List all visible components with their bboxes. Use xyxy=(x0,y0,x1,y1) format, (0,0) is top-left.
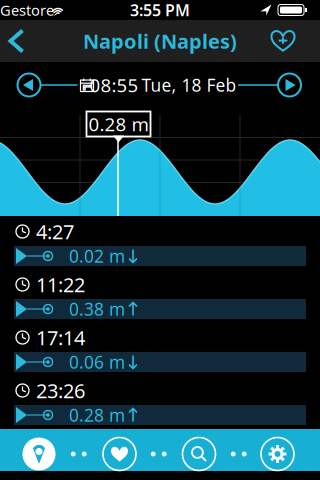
button[interactable]: Next tide xyxy=(274,70,304,100)
staticText: 0.02 m xyxy=(69,244,125,267)
staticText: 0.28 m xyxy=(69,403,125,426)
button[interactable]: Search xyxy=(182,437,215,470)
staticText: 0.06 m xyxy=(69,350,125,373)
button[interactable]: Locations xyxy=(22,437,55,470)
staticText: 0.28 m xyxy=(88,112,148,136)
staticText: 0.38 m xyxy=(69,297,125,320)
button[interactable]: Back xyxy=(1,20,34,61)
button[interactable]: Add to favorites xyxy=(261,20,305,61)
button[interactable]: Tide 4:27 0.02 m xyxy=(14,246,306,266)
button[interactable]: Favorites xyxy=(103,437,136,470)
button[interactable]: Tide 11:22 0.38 m xyxy=(14,299,306,319)
staticText: 11:22 xyxy=(36,271,85,298)
staticText: 23:26 xyxy=(36,377,85,404)
button[interactable]: Tide 17:14 0.06 m xyxy=(14,352,306,372)
button[interactable]: Tide 23:26 0.28 m xyxy=(14,405,306,425)
button[interactable]: Previous tide xyxy=(14,70,44,100)
staticText: 17:14 xyxy=(36,324,85,351)
staticText: Tue, 18 Feb xyxy=(141,73,236,96)
staticText: 4:27 xyxy=(36,218,74,245)
staticText: 3:55 PM xyxy=(130,0,190,21)
staticText: Napoli (Naples) xyxy=(83,28,237,54)
staticText: 08:55 xyxy=(89,73,138,97)
staticText: Gestore xyxy=(0,0,54,20)
button[interactable]: Settings xyxy=(261,437,294,470)
